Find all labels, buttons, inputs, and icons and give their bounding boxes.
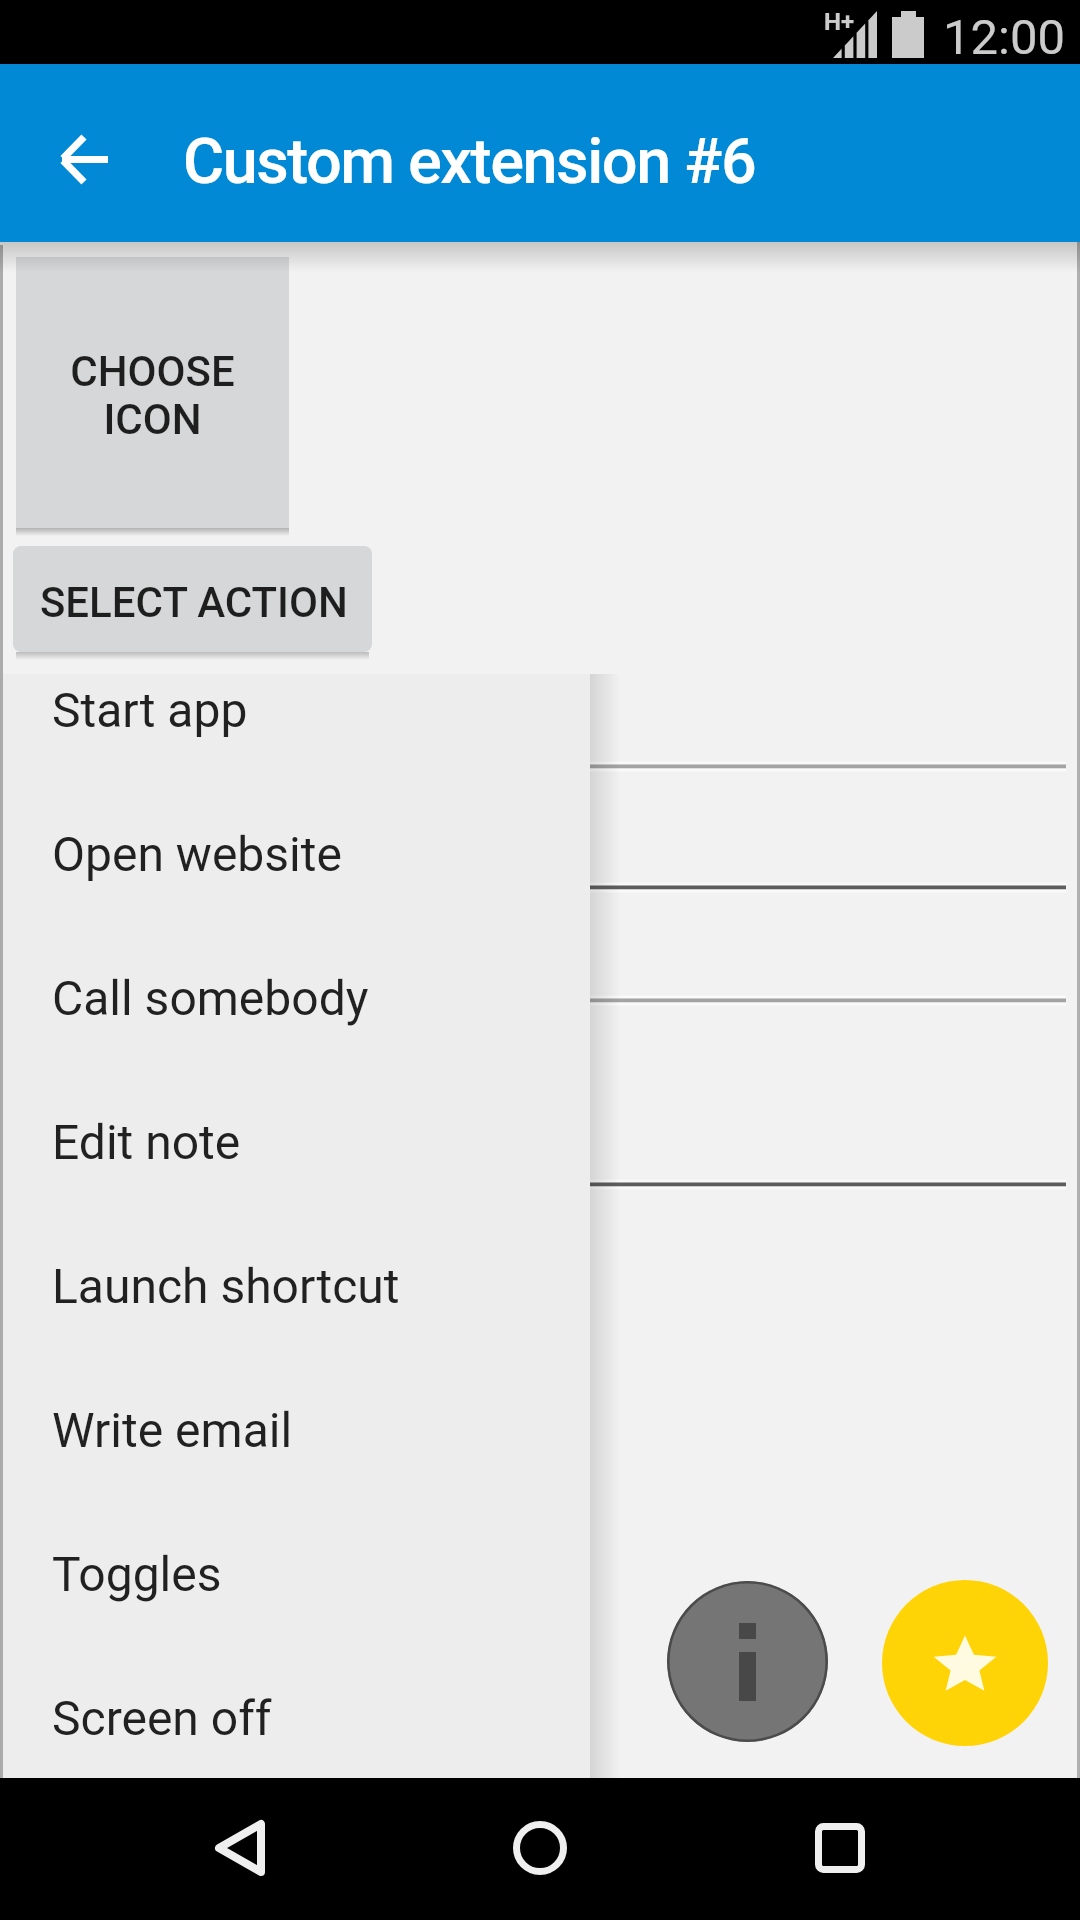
staticText: 12:00 (943, 9, 1066, 66)
button[interactable]: Open website (0, 782, 590, 926)
button[interactable]: Home (470, 1778, 610, 1918)
staticText: Start app (52, 682, 248, 738)
staticText: Toggles (52, 1546, 222, 1602)
staticText: Screen off (52, 1690, 272, 1746)
staticText: Call somebody (52, 970, 369, 1026)
button[interactable]: Recent apps (770, 1778, 910, 1918)
button[interactable]: SELECT ACTION (13, 546, 372, 652)
button[interactable]: Favourite (882, 1580, 1048, 1746)
button[interactable]: Toggles (0, 1502, 590, 1646)
staticText: SELECT ACTION (40, 578, 348, 627)
staticText: Open website (52, 826, 342, 882)
staticText: Write email (52, 1402, 293, 1458)
staticText: CHOOSE ICON (70, 347, 235, 444)
button[interactable]: Edit note (0, 1070, 590, 1214)
button[interactable]: Launch shortcut (0, 1214, 590, 1358)
button[interactable]: Write email (0, 1358, 590, 1502)
button[interactable]: Screen off (0, 1646, 590, 1790)
button[interactable]: Back (170, 1778, 310, 1918)
button[interactable]: Navigate up (30, 105, 138, 213)
button[interactable]: CHOOSE ICON (16, 257, 289, 528)
staticText: Launch shortcut (52, 1258, 400, 1314)
staticText: Edit note (52, 1114, 241, 1170)
button[interactable]: Start app (0, 638, 590, 782)
staticText: Custom extension #6 (183, 125, 756, 199)
button[interactable]: Information (667, 1581, 828, 1742)
staticText: H+ (824, 8, 855, 36)
button[interactable]: Call somebody (0, 926, 590, 1070)
